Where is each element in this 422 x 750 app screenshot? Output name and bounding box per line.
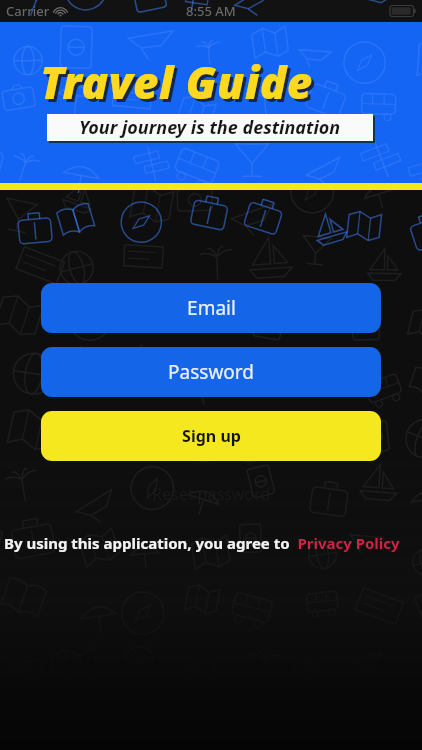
staticText: Password <box>168 359 254 385</box>
staticText: Sign up <box>182 425 241 447</box>
staticText: Reset password <box>152 483 271 505</box>
staticText: Travel Guide <box>43 55 316 115</box>
button[interactable]: By using this application, you agree to … <box>0 531 422 555</box>
button[interactable]: Sign up <box>41 411 381 461</box>
staticText: By using this application, you agree to … <box>4 533 422 553</box>
staticText: Your journey is the destination <box>79 115 341 140</box>
staticText: Carrier <box>6 2 50 20</box>
staticText: Email <box>187 295 236 321</box>
staticText: Travel Guide <box>40 52 313 112</box>
staticText: 8:55 AM <box>186 2 236 20</box>
button[interactable]: Password <box>41 347 381 397</box>
button[interactable]: Email <box>41 283 381 333</box>
button[interactable]: Reset password <box>0 483 422 505</box>
